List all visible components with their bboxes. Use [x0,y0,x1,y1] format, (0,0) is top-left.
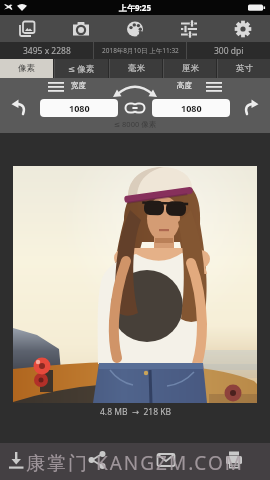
staticText: 高度 [177,81,192,90]
button[interactable]: 3495 x 2288 [0,42,93,59]
button[interactable]: 2018年8月10日 上午11:32 [94,42,186,59]
button[interactable] [46,81,66,93]
staticText: 2018年8月10日 上午11:32 [102,46,179,55]
button[interactable]: 英寸 [218,59,270,78]
button[interactable] [238,96,264,120]
staticText: 1080 [181,102,202,114]
button[interactable]: 1080 [152,99,230,117]
button[interactable] [156,450,176,470]
button[interactable] [0,15,54,42]
staticText: 3495 x 2288 [23,45,71,57]
button[interactable] [6,96,32,120]
staticText: 厘米 [182,63,199,74]
staticText: 宽度 [71,81,86,90]
staticText: 1080 [69,102,90,114]
button[interactable] [204,81,224,93]
button[interactable]: 像素 [0,59,53,78]
button[interactable] [162,15,216,42]
button[interactable] [6,450,26,470]
button[interactable]: 300 dpi [187,42,270,59]
staticText: 4.8 MB → 218 KB [100,406,171,418]
staticText: 300 dpi [214,45,244,57]
button[interactable] [87,450,107,470]
staticText: ≤ 像素 [68,63,95,75]
button[interactable] [108,15,162,42]
staticText: 英寸 [236,63,253,74]
staticText: 毫米 [128,63,145,74]
button[interactable]: 1080 [40,99,118,117]
button[interactable] [216,15,270,42]
staticText: ≤ 8000 像素 [0,119,270,129]
button[interactable]: 毫米 [110,59,162,78]
button[interactable]: ≤ 像素 [55,59,108,78]
button[interactable] [224,450,244,470]
button[interactable] [122,100,148,116]
staticText: 康掌门 KANGZM.COM [26,450,245,476]
staticText: 上午9:25 [119,2,151,13]
button[interactable]: 厘米 [164,59,216,78]
staticText: 像素 [18,63,35,74]
button[interactable] [54,15,108,42]
